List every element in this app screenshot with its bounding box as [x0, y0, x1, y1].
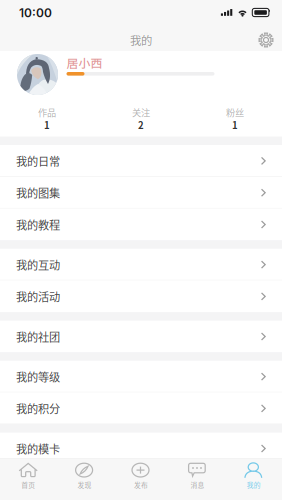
button[interactable]: 发现	[56, 459, 113, 500]
staticText: 发现	[78, 480, 92, 490]
button[interactable]: 消息	[169, 459, 226, 500]
staticText: 我的积分	[16, 400, 60, 416]
button[interactable]: 我的教程	[0, 209, 282, 240]
staticText: 我的活动	[16, 288, 60, 304]
staticText: 消息	[190, 480, 204, 490]
button[interactable]: 我的互动	[0, 249, 282, 280]
staticText: 我的图集	[16, 185, 60, 201]
button[interactable]: 我的社团	[0, 321, 282, 352]
staticText: 我的	[247, 480, 261, 490]
staticText: 粉丝	[226, 106, 244, 119]
staticText: 我的	[130, 32, 152, 48]
button[interactable]: 头像 Avatar	[17, 54, 58, 95]
button[interactable]: 我的活动	[0, 280, 282, 312]
button[interactable]: 首页	[0, 459, 56, 500]
button[interactable]: 我的等级	[0, 361, 282, 392]
staticText: 2	[138, 118, 144, 132]
button[interactable]: 我的	[226, 459, 282, 500]
staticText: 我的互动	[16, 256, 60, 273]
staticText: 作品	[38, 106, 56, 119]
staticText: 我的社团	[16, 328, 60, 345]
button[interactable]: 粉丝	[188, 106, 282, 130]
button[interactable]: 我的积分	[0, 392, 282, 424]
staticText: 居小西	[66, 54, 102, 71]
staticText: 我的教程	[16, 216, 60, 233]
staticText: 发布	[134, 480, 148, 490]
button[interactable]: 我的图集	[0, 177, 282, 209]
staticText: 1	[44, 118, 50, 132]
staticText: 关注	[132, 106, 150, 119]
staticText: 10:00	[19, 6, 52, 20]
staticText: 首页	[21, 480, 35, 490]
staticText: 我的日常	[16, 153, 60, 169]
button[interactable]: 作品	[0, 106, 94, 130]
staticText: 我的等级	[16, 368, 60, 385]
button[interactable]: 发布	[113, 459, 169, 500]
button[interactable]: 设置 Settings	[252, 25, 280, 54]
button[interactable]: 关注	[94, 106, 188, 130]
staticText: 我的模卡	[16, 440, 60, 457]
button[interactable]: 我的日常	[0, 145, 282, 177]
staticText: 1	[232, 118, 238, 132]
button[interactable]: 我的模卡	[0, 433, 282, 464]
